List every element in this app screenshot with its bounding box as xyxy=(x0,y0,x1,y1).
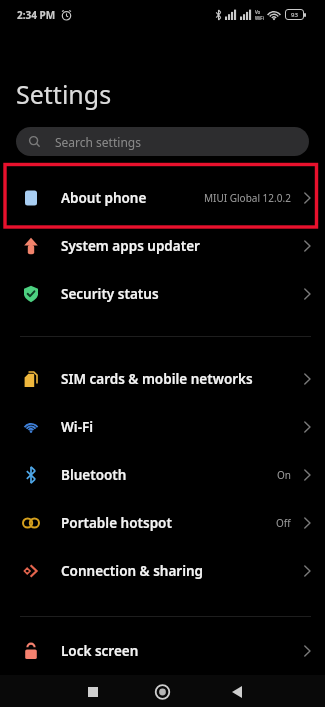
staticText: Lock screen xyxy=(61,642,139,660)
button[interactable]: Lock screen xyxy=(0,627,325,675)
staticText: WiFi xyxy=(255,15,264,21)
staticText: Connection & sharing xyxy=(61,562,204,580)
staticText: Wi-Fi xyxy=(61,418,94,436)
button[interactable] xyxy=(0,675,109,707)
staticText: 93 xyxy=(291,11,298,19)
button[interactable]: Portable hotspot xyxy=(0,499,325,547)
button[interactable]: System apps updater xyxy=(0,222,325,270)
button[interactable]: SIM cards & mobile networks xyxy=(0,355,325,403)
staticText: Bluetooth xyxy=(61,466,127,484)
staticText: On xyxy=(277,468,291,482)
button[interactable]: Security status xyxy=(0,270,325,318)
button[interactable]: Search settings xyxy=(16,127,309,156)
staticText: SIM cards & mobile networks xyxy=(61,370,253,388)
staticText: About phone xyxy=(61,189,147,207)
staticText: System apps updater xyxy=(61,237,200,255)
staticText: Settings xyxy=(16,77,112,111)
button[interactable]: Connection & sharing xyxy=(0,547,325,595)
staticText: Portable hotspot xyxy=(61,514,172,532)
staticText: Off xyxy=(276,516,291,530)
staticText: Vo xyxy=(255,9,261,15)
button[interactable]: About phone xyxy=(0,174,325,222)
staticText: MIUI Global 12.0.2 xyxy=(204,191,291,205)
staticText: 2:34 PM xyxy=(17,8,56,22)
staticText: Search settings xyxy=(55,134,141,150)
staticText: Security status xyxy=(61,285,159,303)
button[interactable] xyxy=(217,675,325,707)
button[interactable]: Bluetooth xyxy=(0,451,325,499)
button[interactable]: Wi-Fi xyxy=(0,403,325,451)
button[interactable] xyxy=(109,675,217,707)
